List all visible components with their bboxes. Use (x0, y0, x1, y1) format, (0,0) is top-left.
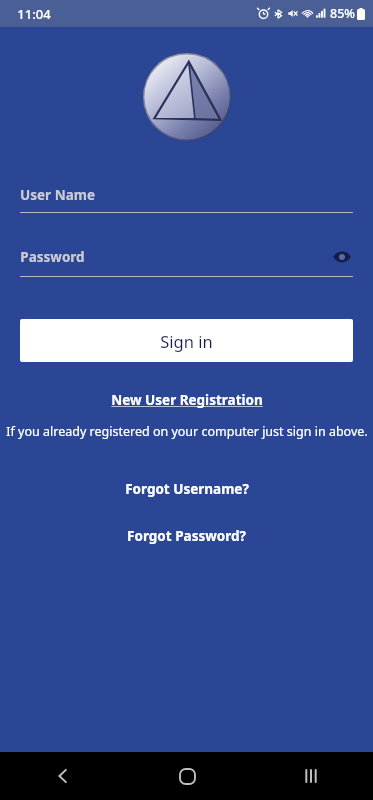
staticText: Forgot Password? (127, 527, 246, 545)
staticText: Forgot Username? (125, 480, 249, 498)
button[interactable]: User Name (20, 186, 353, 213)
button[interactable]: Password (20, 246, 353, 277)
button[interactable]: Recent apps (249, 752, 373, 800)
button[interactable]: Back (0, 752, 125, 800)
staticText: If you already registered on your comput… (6, 423, 368, 440)
staticText: New User Registration (111, 391, 263, 409)
button[interactable]: New User Registration (0, 391, 373, 409)
staticText: Sign in (160, 330, 213, 352)
button[interactable]: Forgot Username? (0, 480, 373, 498)
staticText: User Name (20, 186, 95, 204)
staticText: Password (20, 248, 85, 266)
button[interactable]: Show password (331, 246, 353, 268)
button[interactable]: Sign in (20, 319, 353, 362)
staticText: 85% (330, 5, 355, 22)
staticText: 11:04 (17, 5, 51, 23)
button[interactable]: Forgot Password? (0, 527, 373, 545)
button[interactable]: Home (125, 752, 249, 800)
